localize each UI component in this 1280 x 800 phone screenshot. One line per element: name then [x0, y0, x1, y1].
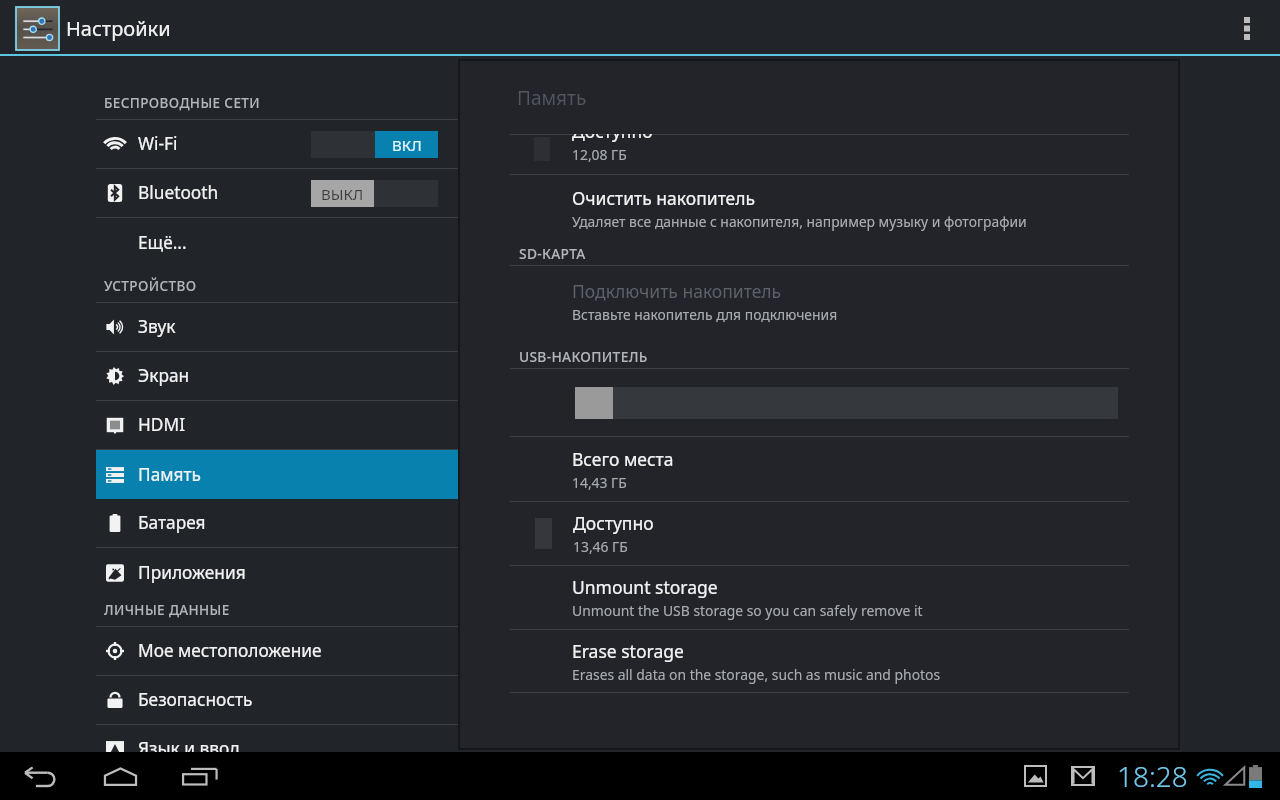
- button[interactable]: Подключить накопитель: [510, 266, 1129, 336]
- button[interactable]: Erase storage: [510, 630, 1129, 692]
- button[interactable]: Память: [96, 450, 458, 499]
- staticText: 14,43 ГБ: [572, 473, 627, 492]
- staticText: 13,46 ГБ: [573, 537, 628, 556]
- button[interactable]: HDMI: [96, 401, 458, 449]
- staticText: ЛИЧНЫЕ ДАННЫЕ: [104, 601, 230, 619]
- staticText: Экран: [138, 364, 190, 388]
- staticText: Вставьте накопитель для подключения: [572, 305, 838, 324]
- button[interactable]: Settings: [16, 7, 59, 50]
- staticText: HDMI: [138, 413, 185, 437]
- staticText: БЕСПРОВОДНЫЕ СЕТИ: [104, 94, 261, 112]
- button[interactable]: Recent apps: [177, 752, 223, 800]
- button[interactable]: Wi-Fi: [96, 120, 458, 168]
- staticText: Unmount the USB storage so you can safel…: [572, 601, 923, 620]
- button[interactable]: Батарея: [96, 499, 458, 547]
- button[interactable]: Ещё...: [96, 218, 458, 267]
- staticText: Мое местоположение: [138, 639, 322, 663]
- staticText: Память: [517, 85, 587, 111]
- button[interactable]: Очистить накопитель: [510, 175, 1129, 242]
- staticText: УСТРОЙСТВО: [104, 277, 197, 295]
- staticText: Безопасность: [138, 688, 253, 712]
- staticText: Память: [138, 463, 202, 487]
- staticText: Язык и ввод: [138, 737, 240, 761]
- button[interactable]: Unmount storage: [510, 566, 1129, 629]
- button[interactable]: Приложения: [96, 548, 458, 597]
- button[interactable]: Экран: [96, 352, 458, 400]
- staticText: ВКЛ: [392, 135, 422, 155]
- staticText: 12,08 ГБ: [572, 145, 627, 164]
- staticText: Erase storage: [572, 639, 684, 663]
- staticText: Ещё...: [138, 231, 187, 255]
- button[interactable]: Доступно: [510, 135, 1129, 174]
- button[interactable]: Bluetooth: [96, 169, 458, 217]
- staticText: 18:28: [1117, 757, 1188, 795]
- staticText: Доступно: [573, 511, 654, 535]
- staticText: Звук: [138, 315, 176, 339]
- staticText: Очистить накопитель: [572, 186, 756, 210]
- button[interactable]: Home: [97, 752, 143, 800]
- button[interactable]: Всего места: [510, 437, 1129, 501]
- staticText: Всего места: [572, 447, 674, 471]
- staticText: Доступно: [572, 119, 653, 143]
- staticText: Батарея: [138, 511, 206, 535]
- button[interactable]: More options: [1219, 0, 1275, 56]
- staticText: USB-НАКОПИТЕЛЬ: [519, 347, 648, 366]
- staticText: SD-КАРТА: [519, 244, 586, 263]
- staticText: Настройки: [66, 15, 171, 42]
- button[interactable]: Мое местоположение: [96, 627, 458, 675]
- staticText: Wi-Fi: [138, 132, 178, 156]
- button[interactable]: Звук: [96, 303, 458, 351]
- staticText: ВЫКЛ: [321, 184, 364, 204]
- button[interactable]: Безопасность: [96, 676, 458, 724]
- button[interactable]: Доступно: [510, 502, 1129, 565]
- staticText: Unmount storage: [572, 575, 718, 599]
- button[interactable]: Back: [17, 752, 63, 800]
- button[interactable]: Язык и ввод: [96, 725, 458, 773]
- button[interactable]: ВЫКЛ: [311, 180, 438, 207]
- staticText: Удаляет все данные с накопителя, наприме…: [572, 212, 1027, 231]
- staticText: Приложения: [138, 561, 246, 585]
- staticText: Bluetooth: [138, 181, 219, 205]
- button[interactable]: ВКЛ: [311, 131, 438, 158]
- staticText: Подключить накопитель: [572, 279, 782, 303]
- staticText: Erases all data on the storage, such as …: [572, 665, 941, 684]
